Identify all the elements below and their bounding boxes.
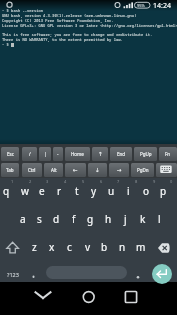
button[interactable] <box>0 234 26 260</box>
staticText: 95% <box>137 3 145 8</box>
button[interactable]: Esc <box>1 147 19 161</box>
button[interactable]: ← <box>65 163 86 177</box>
button[interactable]: v <box>79 234 96 260</box>
button[interactable]: ↓ <box>88 163 107 177</box>
staticText: Copyright (C) 2013 Free Software Foundat… <box>2 18 114 23</box>
staticText: 14:24 <box>153 1 171 11</box>
button[interactable]: d <box>48 206 65 232</box>
button[interactable]: Alt <box>44 163 63 177</box>
button[interactable]: / <box>22 147 37 161</box>
button[interactable]: Tab <box>1 163 19 177</box>
staticText: t <box>75 184 79 198</box>
button[interactable]: Home <box>65 147 90 161</box>
button[interactable]: l <box>151 206 168 232</box>
staticText: 1 <box>11 179 14 184</box>
button[interactable]: k <box>134 206 151 232</box>
staticText: / <box>29 151 31 157</box>
staticText: c <box>67 240 72 254</box>
staticText: Fn <box>165 151 171 157</box>
button[interactable]: PgUp <box>134 147 157 161</box>
staticText: o <box>143 184 150 198</box>
staticText: f <box>72 212 76 226</box>
button[interactable]: b <box>96 234 113 260</box>
staticText: 3 <box>46 179 49 184</box>
button[interactable]: h <box>100 206 117 232</box>
staticText: z <box>32 240 37 254</box>
button[interactable]: PgDn <box>131 163 154 177</box>
staticText: k <box>140 212 146 226</box>
staticText: Alt <box>51 167 57 173</box>
button[interactable] <box>118 284 144 310</box>
staticText: Esc <box>7 151 14 157</box>
button[interactable]: Fn <box>159 147 177 161</box>
button[interactable]: r <box>51 178 68 204</box>
button[interactable]: a <box>14 206 31 232</box>
button[interactable] <box>29 284 57 310</box>
button[interactable] <box>130 262 146 284</box>
staticText: Home <box>71 151 84 157</box>
button[interactable]: End <box>110 147 132 161</box>
button[interactable] <box>75 284 102 310</box>
staticText: s <box>37 212 42 226</box>
button[interactable] <box>156 163 177 177</box>
button[interactable] <box>46 266 127 279</box>
button[interactable] <box>146 234 177 260</box>
staticText: - <box>57 151 59 157</box>
button[interactable]: ↑ <box>92 147 108 161</box>
button[interactable]: j <box>117 206 134 232</box>
button[interactable]: u <box>103 178 120 204</box>
staticText: v <box>85 240 91 254</box>
button[interactable]: | <box>39 147 51 161</box>
staticText: → <box>117 167 122 173</box>
staticText: PgUp <box>140 151 152 157</box>
staticText: ~ $ <box>2 42 9 47</box>
staticText: PgDn <box>137 167 149 173</box>
staticText: Tab <box>6 167 14 173</box>
button[interactable]: y <box>85 178 102 204</box>
button[interactable]: e <box>33 178 50 204</box>
staticText: w <box>21 184 29 198</box>
button[interactable] <box>26 262 42 284</box>
staticText: i <box>127 184 130 198</box>
button[interactable]: → <box>109 163 129 177</box>
staticText: l <box>158 212 161 226</box>
button[interactable] <box>152 264 172 284</box>
button[interactable]: t <box>68 178 85 204</box>
staticText: h <box>105 212 112 226</box>
staticText: There is NO WARRANTY, to the extent perm… <box>2 37 123 42</box>
staticText: ↓ <box>95 167 100 173</box>
staticText: m <box>136 240 146 254</box>
staticText: 9 <box>153 179 156 184</box>
staticText: j <box>124 212 127 226</box>
staticText: d <box>53 212 60 226</box>
staticText: 4 <box>64 179 67 184</box>
staticText: 0 <box>170 179 173 184</box>
button[interactable]: g <box>82 206 99 232</box>
staticText: End <box>117 151 126 157</box>
button[interactable]: Ctrl <box>22 163 42 177</box>
button[interactable]: m <box>132 234 149 260</box>
staticText: g <box>87 212 94 226</box>
staticText: e <box>39 184 45 198</box>
staticText: Ctrl <box>28 167 36 173</box>
button[interactable]: i <box>120 178 137 204</box>
button[interactable]: ?123 <box>0 262 25 286</box>
button[interactable]: x <box>43 234 60 260</box>
button[interactable]: c <box>61 234 78 260</box>
button[interactable]: - <box>53 147 63 161</box>
button[interactable]: z <box>26 234 43 260</box>
staticText: 7 <box>117 179 120 184</box>
button[interactable]: o <box>138 178 155 204</box>
button[interactable]: n <box>114 234 131 260</box>
button[interactable]: f <box>65 206 82 232</box>
button[interactable]: w <box>16 178 33 204</box>
button[interactable]: q <box>0 178 15 204</box>
staticText: u <box>108 184 115 198</box>
button[interactable]: s <box>31 206 48 232</box>
staticText: n <box>119 240 126 254</box>
staticText: a <box>20 212 26 226</box>
staticText: | <box>44 151 47 157</box>
staticText: This is free software; you are free to c… <box>2 32 153 37</box>
staticText: License GPLv3+: GNU GPL version 3 or lat… <box>2 23 177 28</box>
button[interactable]: p <box>155 178 172 204</box>
